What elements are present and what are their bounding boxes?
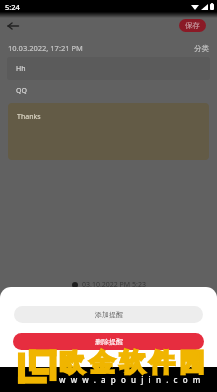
staticText: 03.10.2022 PM 5:23 [82, 280, 146, 290]
staticText: 欧金软件园 [57, 347, 207, 378]
staticText: 删除提醒 [95, 337, 123, 346]
staticText: Thanks [17, 112, 41, 122]
button[interactable]: Thanks [8, 103, 209, 160]
staticText: 10.03.2022, 17:21 PM [8, 43, 83, 53]
button[interactable]: QQ [7, 81, 210, 101]
staticText: 分类 [194, 44, 209, 53]
staticText: 添加提醒 [95, 310, 123, 319]
staticText: 5:24 [5, 2, 20, 12]
button[interactable]: Back [2, 15, 24, 37]
staticText: 欧金软件园 [57, 347, 207, 378]
staticText: QQ [16, 86, 27, 96]
staticText: 保存 [185, 21, 200, 30]
staticText: www.apoujin.com [59, 374, 206, 385]
button[interactable]: 删除提醒 [13, 333, 204, 350]
button[interactable]: Hh [7, 57, 210, 80]
button[interactable]: 保存 [179, 19, 206, 32]
button[interactable]: 分类 [186, 42, 217, 55]
button[interactable]: 添加提醒 [14, 306, 203, 323]
staticText: Hh [16, 64, 26, 74]
